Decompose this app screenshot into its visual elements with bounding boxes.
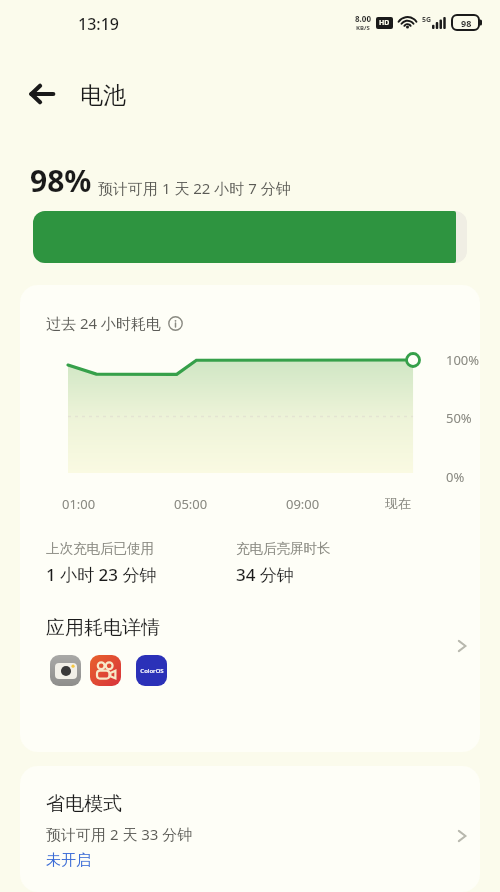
- staticText: 未开启: [46, 851, 91, 870]
- staticText: 100%: [446, 351, 480, 369]
- staticText: 上次充电后已使用: [46, 540, 154, 557]
- button[interactable]: Back: [16, 68, 68, 120]
- staticText: 应用耗电详情: [46, 616, 160, 640]
- staticText: 1 小时 23 分钟: [46, 563, 157, 586]
- staticText: 电池: [80, 81, 126, 110]
- staticText: 50%: [446, 409, 472, 427]
- staticText: ColorOS: [140, 667, 164, 675]
- staticText: 09:00: [286, 495, 320, 513]
- staticText: 预计可用 2 天 33 分钟: [46, 824, 193, 844]
- staticText: 预计可用 1 天 22 小时 7 分钟: [98, 178, 291, 198]
- staticText: KB/S: [356, 24, 370, 32]
- staticText: 01:00: [62, 495, 96, 513]
- staticText: HD: [379, 18, 390, 28]
- button[interactable]: 应用耗电详情: [20, 608, 480, 708]
- staticText: 8.00: [355, 13, 371, 24]
- staticText: 过去 24 小时耗电: [46, 313, 161, 333]
- staticText: 现在: [385, 495, 411, 511]
- staticText: 充电后亮屏时长: [236, 540, 331, 557]
- button[interactable]: 省电模式: [20, 766, 480, 892]
- staticText: 34 分钟: [236, 563, 294, 586]
- staticText: 98%: [30, 160, 92, 201]
- staticText: 5G: [422, 15, 432, 25]
- staticText: 省电模式: [46, 792, 122, 816]
- staticText: 13:19: [78, 13, 119, 35]
- staticText: 0%: [446, 468, 465, 486]
- staticText: 98: [461, 17, 472, 29]
- staticText: 05:00: [174, 495, 208, 513]
